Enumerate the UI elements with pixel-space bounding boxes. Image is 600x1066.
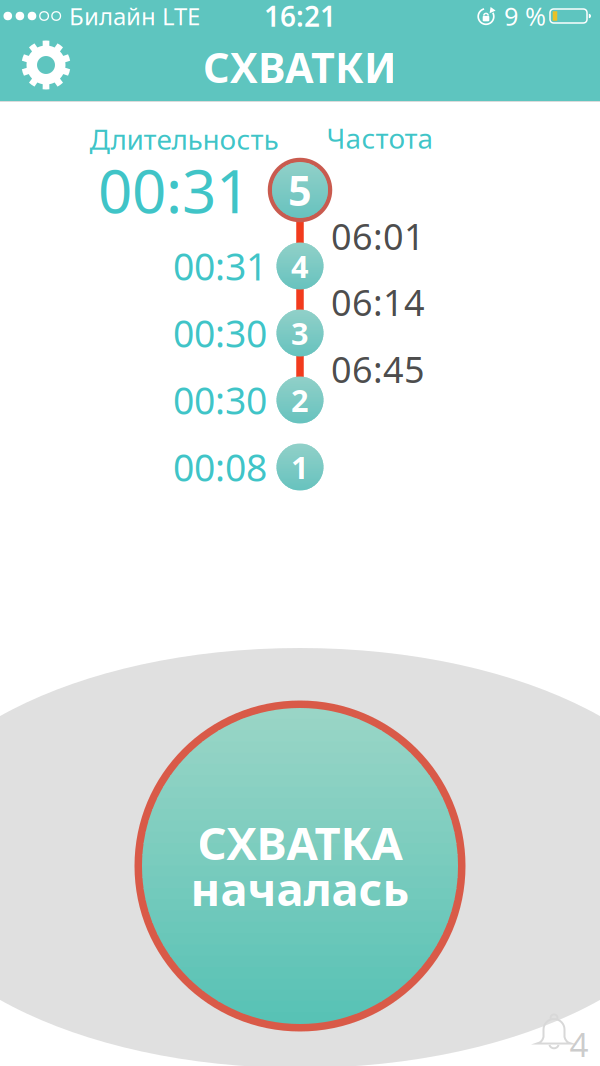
staticText: 06:45 bbox=[331, 345, 425, 393]
button[interactable]: Settings bbox=[21, 40, 71, 90]
button[interactable]: СХВАТКА bbox=[134, 700, 465, 1031]
staticText: 06:14 bbox=[331, 278, 425, 326]
staticText: 00:30 bbox=[173, 308, 267, 358]
button[interactable]: Reminders bbox=[527, 1007, 589, 1059]
staticText: 4 bbox=[291, 246, 309, 286]
staticText: 00:31 bbox=[98, 150, 250, 230]
staticText: 00:31 bbox=[173, 241, 267, 291]
staticText: LTE bbox=[162, 0, 200, 32]
staticText: СХВАТКИ bbox=[203, 40, 397, 94]
staticText: 00:30 bbox=[173, 375, 267, 425]
staticText: 06:01 bbox=[331, 212, 425, 260]
staticText: 5 bbox=[288, 163, 312, 217]
staticText: 1 bbox=[291, 447, 309, 487]
staticText: Частота bbox=[326, 119, 433, 157]
staticText: Длительность bbox=[89, 120, 278, 158]
staticText: Билайн bbox=[69, 0, 156, 32]
staticText: началась bbox=[190, 858, 409, 919]
staticText: 00:08 bbox=[173, 442, 267, 492]
staticText: 16:21 bbox=[264, 0, 336, 35]
staticText: 4 bbox=[569, 1022, 588, 1066]
staticText: 3 bbox=[291, 313, 309, 353]
staticText: 9 % bbox=[504, 0, 546, 33]
staticText: 2 bbox=[291, 380, 309, 420]
staticText: СХВАТКА bbox=[197, 812, 402, 873]
